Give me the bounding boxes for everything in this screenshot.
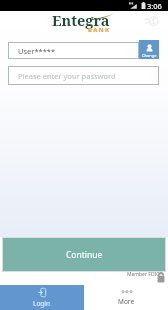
- staticText: Member FDIC: [127, 271, 160, 278]
- button[interactable]: User*****: [8, 42, 139, 59]
- staticText: 3:06: [147, 1, 162, 11]
- button[interactable]: Change: [139, 40, 159, 59]
- staticText: Please enter your password: [18, 71, 116, 81]
- staticText: More: [118, 297, 135, 306]
- button[interactable]: Continue: [3, 238, 165, 271]
- button[interactable]: Rates: [144, 14, 162, 28]
- staticText: Change: [142, 53, 157, 58]
- staticText: Login: [33, 299, 51, 308]
- staticText: Entegra: [52, 10, 110, 30]
- staticText: User*****: [18, 46, 56, 56]
- staticText: Continue: [66, 249, 103, 261]
- button[interactable]: Please enter your password: [8, 66, 159, 85]
- button[interactable]: Login: [0, 285, 84, 310]
- staticText: BANK: [88, 26, 111, 34]
- button[interactable]: More: [84, 285, 168, 310]
